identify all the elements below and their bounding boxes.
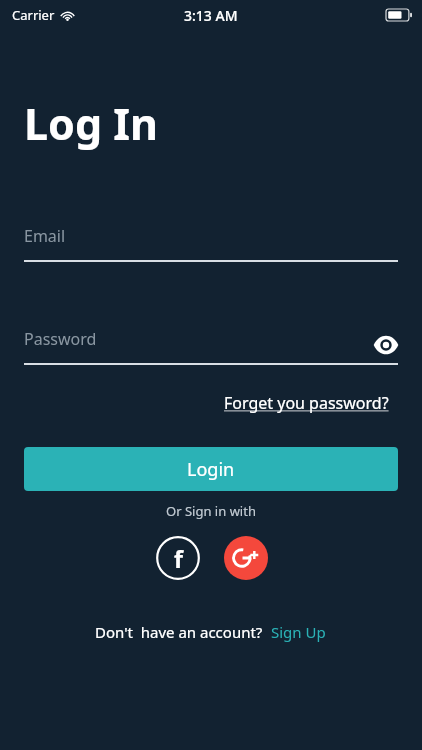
button[interactable]: Sign in with Google xyxy=(224,536,268,580)
button[interactable]: Login xyxy=(24,447,398,491)
staticText: Login xyxy=(187,457,235,482)
staticText: Or Sign in with xyxy=(166,502,256,520)
staticText: f xyxy=(174,543,183,574)
button[interactable]: Password xyxy=(24,328,398,365)
staticText: 3:13 AM xyxy=(184,6,238,25)
staticText: Forget you password? xyxy=(224,392,389,414)
staticText: Sign Up xyxy=(271,622,326,642)
button[interactable]: Show password xyxy=(366,328,406,362)
staticText: Log In xyxy=(24,94,158,153)
button[interactable]: Email xyxy=(24,225,398,262)
button[interactable]: Sign Up xyxy=(263,620,328,644)
button[interactable]: Sign in with Facebook xyxy=(156,536,200,580)
staticText: Email xyxy=(24,225,66,247)
staticText: Password xyxy=(24,328,97,350)
staticText: Don't have an account? xyxy=(95,622,263,642)
button[interactable]: Forget you password? xyxy=(222,390,391,416)
staticText: Carrier xyxy=(12,6,55,24)
